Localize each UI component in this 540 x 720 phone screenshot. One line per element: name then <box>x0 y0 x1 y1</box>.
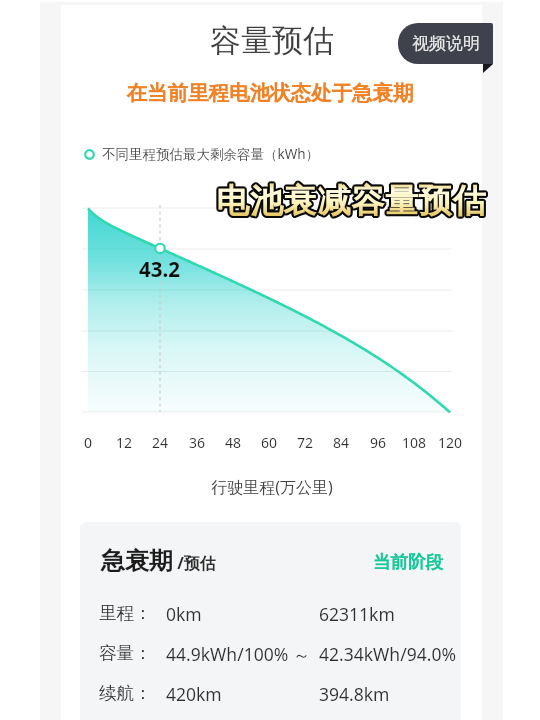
staticText: 60 <box>247 433 291 452</box>
staticText: 电池衰减容量预估 <box>218 180 489 222</box>
button[interactable]: 急衰期 <box>80 522 461 720</box>
staticText: 108 <box>392 433 436 452</box>
staticText: 48 <box>211 433 255 452</box>
staticText: 12 <box>102 433 146 452</box>
staticText: 电池衰减容量预估 <box>215 180 486 222</box>
staticText: 43.2 <box>139 255 180 283</box>
staticText: 续航： <box>99 682 152 704</box>
staticText: 容量： <box>99 642 152 664</box>
staticText: 在当前里程电池状态处于急衰期 <box>0 80 540 106</box>
staticText: 当前阶段 <box>373 551 443 573</box>
staticText: 96 <box>356 433 400 452</box>
staticText: 电池衰减容量预估 <box>216 179 487 221</box>
staticText: 72 <box>283 433 327 452</box>
staticText: 120 <box>428 433 472 452</box>
staticText: 电池衰减容量预估 <box>217 178 488 220</box>
staticText: 电池衰减容量预估 <box>216 181 487 223</box>
staticText: 行驶里程(万公里) <box>2 476 540 498</box>
button[interactable]: 视频说明 <box>398 23 493 64</box>
staticText: 不同里程预估最大剩余容量（kWh） <box>102 145 320 163</box>
staticText: 44.9kWh/100% ～ <box>166 642 311 666</box>
staticText: 电池衰减容量预估 <box>214 181 485 223</box>
staticText: 电池衰减容量预估 <box>215 178 486 220</box>
staticText: 电池衰减容量预估 <box>217 181 488 223</box>
staticText: 84 <box>319 433 363 452</box>
staticText: 电池衰减容量预估 <box>214 179 485 221</box>
staticText: 42.34kWh/94.0% <box>319 642 456 666</box>
staticText: 容量预估 <box>210 21 334 60</box>
staticText: 电池衰减容量预估 <box>216 180 487 222</box>
staticText: 电池衰减容量预估 <box>215 182 486 224</box>
staticText: 里程： <box>99 602 152 624</box>
staticText: 电池衰减容量预估 <box>217 180 488 222</box>
staticText: 电池衰减容量预估 <box>217 179 488 221</box>
staticText: 394.8km <box>319 682 390 706</box>
staticText: 电池衰减容量预估 <box>216 182 487 224</box>
staticText: 视频说明 <box>412 33 480 54</box>
staticText: 电池衰减容量预估 <box>218 181 489 223</box>
staticText: 24 <box>138 433 182 452</box>
staticText: 电池衰减容量预估 <box>217 182 488 224</box>
staticText: 急衰期 <box>101 546 173 576</box>
staticText: /预估 <box>173 552 216 574</box>
staticText: 电池衰减容量预估 <box>216 178 487 220</box>
staticText: 0 <box>66 433 110 452</box>
staticText: 36 <box>175 433 219 452</box>
staticText: 62311km <box>319 602 395 626</box>
staticText: 420km <box>166 682 222 706</box>
staticText: 电池衰减容量预估 <box>214 180 485 222</box>
staticText: 电池衰减容量预估 <box>218 179 489 221</box>
staticText: 电池衰减容量预估 <box>215 179 486 221</box>
staticText: 0km <box>166 602 202 626</box>
staticText: 电池衰减容量预估 <box>215 181 486 223</box>
